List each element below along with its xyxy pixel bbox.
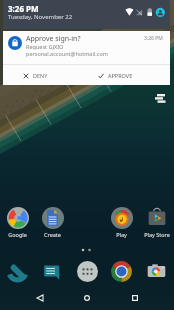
staticText: APPROVE: [108, 72, 133, 79]
button[interactable]: Chrome: [104, 259, 139, 283]
button[interactable]: APPROVE: [86, 65, 170, 85]
staticText: 3:26 PM: [8, 3, 39, 14]
button[interactable]: Messages: [35, 259, 70, 283]
button[interactable]: Recent apps: [127, 290, 143, 306]
button[interactable]: Phone: [0, 259, 35, 283]
button[interactable]: DENY: [3, 65, 86, 85]
staticText: 3:26 PM: [144, 35, 163, 42]
staticText: Play: [116, 231, 127, 238]
staticText: personal.account@hotmail.com: [26, 50, 108, 57]
staticText: Create: [44, 231, 61, 238]
button[interactable]: All apps: [70, 259, 105, 283]
button[interactable]: Back: [32, 290, 48, 306]
button[interactable]: Play Store: [139, 207, 174, 238]
button[interactable]: Google: [0, 207, 35, 238]
staticText: Tuesday, November 22: [8, 13, 73, 21]
button[interactable]: Home: [79, 290, 95, 306]
staticText: DENY: [33, 72, 48, 79]
staticText: Approve sign-in?: [26, 34, 81, 44]
button[interactable]: Camera: [139, 259, 174, 283]
staticText: Google: [8, 231, 27, 238]
staticText: Request GJXIO: [26, 43, 64, 50]
button[interactable]: Create: [35, 207, 70, 238]
button[interactable]: Play: [104, 207, 139, 238]
staticText: Play Store: [144, 231, 170, 238]
